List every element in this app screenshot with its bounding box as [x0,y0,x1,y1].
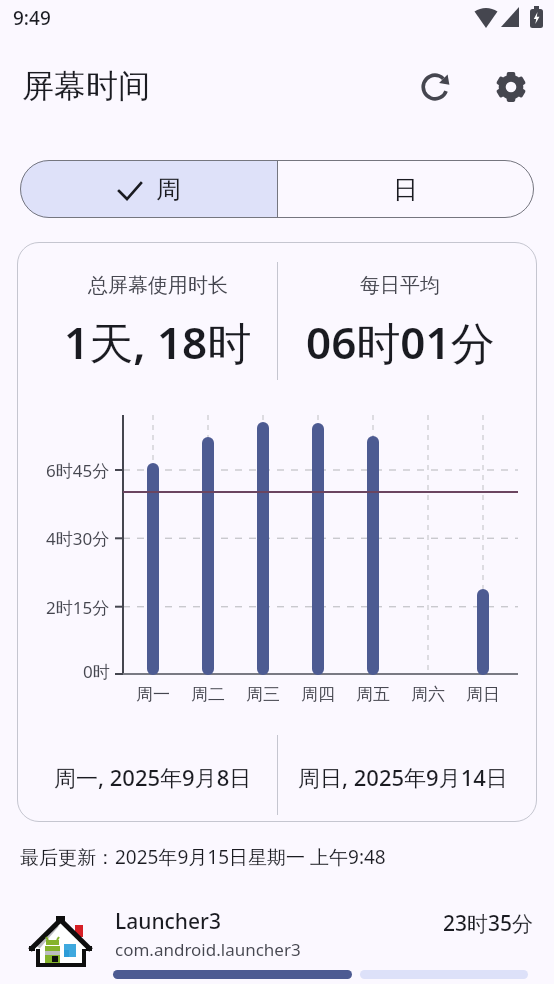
staticText: 周五 [356,684,390,705]
staticText: 周四 [301,684,335,705]
staticText: 最后更新：2025年9月15日星期一 上午9:48 [20,844,386,870]
staticText: 4时30分 [46,527,110,549]
staticText: 06时01分 [306,312,495,370]
staticText: 屏幕时间 [22,66,150,106]
button[interactable] [415,67,455,107]
staticText: 周二 [191,684,225,705]
staticText: com.android.launcher3 [115,938,301,961]
button[interactable] [20,160,277,218]
staticText: 周日, 2025年9月14日 [298,762,508,790]
button[interactable] [491,67,531,107]
staticText: 1天, 18时 [64,312,252,370]
staticText: Launcher3 [115,907,221,935]
staticText: 23时35分 [443,909,534,937]
staticText: 2时15分 [46,596,110,618]
staticText: 0时 [83,660,110,682]
staticText: 周六 [411,684,445,705]
staticText: 日 [393,174,418,205]
staticText: 周三 [246,684,280,705]
staticText: 总屏幕使用时长 [88,273,228,298]
staticText: 周 [156,174,181,205]
staticText: 周一 [136,684,170,705]
staticText: 每日平均 [360,273,440,298]
button[interactable] [0,888,554,984]
staticText: 6时45分 [46,459,110,481]
staticText: 周日 [466,684,500,705]
staticText: 周一, 2025年9月8日 [54,762,252,790]
button[interactable] [277,160,534,218]
staticText: 9:49 [13,5,51,29]
